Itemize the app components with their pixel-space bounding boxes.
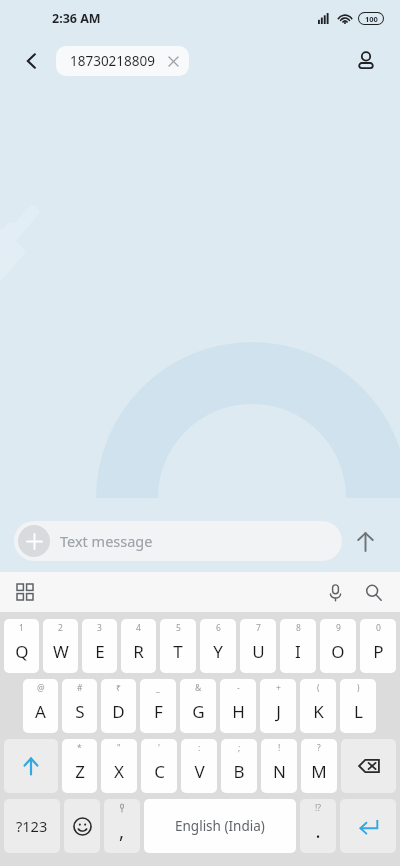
button[interactable]: Backspace (341, 739, 396, 793)
staticText: 9 (336, 622, 341, 634)
staticText: L (354, 700, 363, 723)
button[interactable]: Voice input (316, 573, 354, 611)
button[interactable]: 3 (82, 619, 117, 673)
staticText: T (173, 640, 183, 663)
staticText: English (India) (175, 817, 265, 835)
staticText: 7 (256, 622, 261, 634)
button[interactable]: Contacts (346, 41, 386, 81)
staticText: F (154, 700, 163, 723)
button[interactable]: @ (23, 679, 58, 733)
button[interactable]: 1 (4, 619, 39, 673)
button[interactable]: _ (140, 679, 176, 733)
staticText: + (276, 682, 281, 694)
button[interactable]: Space (144, 799, 296, 853)
staticText: 8 (296, 622, 301, 634)
button[interactable]: 4 (121, 619, 156, 673)
staticText: R (133, 640, 144, 663)
staticText: Z (75, 760, 85, 783)
button[interactable]: Add attachment (14, 521, 342, 561)
button[interactable]: 5 (160, 619, 196, 673)
staticText: Q (15, 640, 29, 663)
button[interactable]: ' (141, 739, 177, 793)
staticText: 18730218809 (70, 52, 155, 70)
staticText: M (311, 760, 327, 783)
staticText: I (295, 640, 301, 663)
staticText: ₹ (116, 682, 121, 694)
button[interactable]: Add attachment (18, 525, 50, 557)
staticText: , (119, 818, 125, 844)
staticText: G (192, 700, 205, 723)
button[interactable]: 9 (320, 619, 356, 673)
staticText: B (233, 760, 245, 783)
button[interactable]: ₹ (101, 679, 136, 733)
staticText: O (331, 640, 345, 663)
staticText: _ (156, 682, 160, 694)
button[interactable]: 2 (43, 619, 78, 673)
button[interactable]: 6 (200, 619, 236, 673)
staticText: ' (158, 742, 160, 754)
staticText: U (252, 640, 265, 663)
staticText: 100 (365, 14, 378, 24)
staticText: ; (238, 742, 241, 754)
button[interactable]: 7 (240, 619, 276, 673)
staticText: Text message (60, 531, 153, 551)
staticText: . (315, 818, 321, 844)
button[interactable]: ; (221, 739, 257, 793)
staticText: E (95, 640, 105, 663)
button[interactable]: ( (300, 679, 336, 733)
button[interactable]: ? (301, 739, 337, 793)
button[interactable]: Comma (104, 799, 140, 853)
staticText: Y (213, 640, 223, 663)
button[interactable]: - (220, 679, 256, 733)
button[interactable]: # (62, 679, 97, 733)
staticText: 0 (376, 622, 381, 634)
button[interactable]: " (101, 739, 137, 793)
staticText: 1 (19, 622, 24, 634)
button[interactable]: Send (342, 518, 388, 564)
button[interactable]: Back (14, 43, 50, 79)
staticText: 6 (216, 622, 221, 634)
button[interactable]: !? (300, 799, 336, 853)
staticText: !? (315, 802, 321, 814)
staticText: ( (317, 682, 320, 694)
button[interactable]: Remove recipient (165, 53, 181, 69)
button[interactable]: ! (261, 739, 297, 793)
staticText: ! (278, 742, 281, 754)
staticText: 3 (97, 622, 102, 634)
button[interactable]: Symbols (4, 799, 60, 853)
staticText: ) (357, 682, 360, 694)
staticText: V (194, 760, 205, 783)
staticText: 2 (58, 622, 63, 634)
staticText: ?123 (16, 816, 48, 836)
button[interactable]: Shift (4, 739, 58, 793)
staticText: A (35, 700, 46, 723)
button[interactable]: 18730218809 (56, 46, 189, 76)
staticText: " (117, 742, 121, 754)
button[interactable]: + (260, 679, 296, 733)
staticText: W (53, 640, 69, 663)
button[interactable]: 0 (360, 619, 396, 673)
button[interactable]: 8 (280, 619, 316, 673)
staticText: : (198, 742, 201, 754)
staticText: # (77, 682, 83, 694)
button[interactable]: Search (354, 573, 392, 611)
staticText: D (112, 700, 125, 723)
staticText: J (276, 700, 281, 723)
staticText: 4 (136, 622, 141, 634)
staticText: K (313, 700, 324, 723)
button[interactable]: : (181, 739, 217, 793)
staticText: @ (37, 682, 45, 694)
staticText: X (114, 760, 124, 783)
staticText: ? (317, 742, 321, 754)
button[interactable]: * (62, 739, 97, 793)
staticText: 5 (176, 622, 181, 634)
button[interactable]: Emoji (64, 799, 100, 853)
staticText: S (75, 700, 85, 723)
button[interactable]: & (180, 679, 216, 733)
button[interactable]: Toolbox (6, 573, 44, 611)
staticText: P (373, 640, 384, 663)
staticText: * (77, 742, 82, 754)
button[interactable]: Enter (340, 799, 396, 853)
staticText: & (195, 682, 202, 694)
button[interactable]: ) (340, 679, 376, 733)
